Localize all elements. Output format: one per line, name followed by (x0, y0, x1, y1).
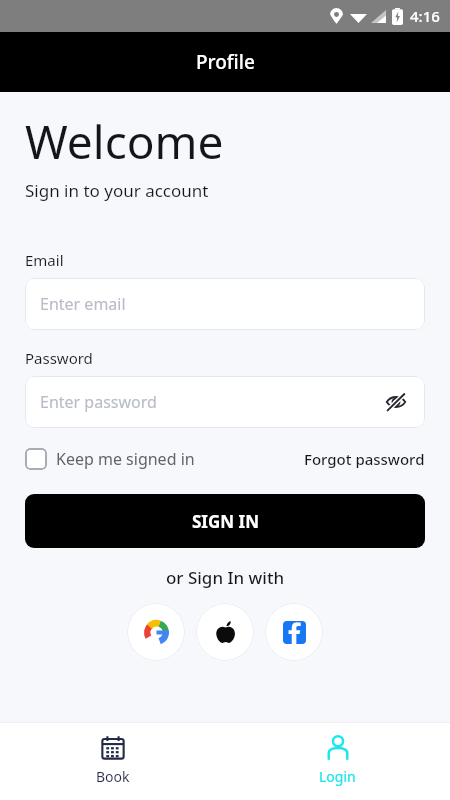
button[interactable]: Sign in with Facebook (265, 603, 323, 661)
staticText: Profile (196, 49, 255, 75)
staticText: Password (25, 348, 93, 368)
staticText: SIGN IN (192, 510, 259, 533)
staticText: Email (25, 250, 64, 270)
staticText: Enter password (40, 391, 382, 413)
button[interactable]: Enter email (25, 278, 425, 330)
button[interactable]: Keep me signed in (25, 444, 195, 474)
button[interactable]: SIGN IN (25, 494, 425, 548)
staticText: Sign in to your account (25, 179, 209, 202)
staticText: Keep me signed in (56, 448, 195, 470)
button[interactable]: Enter password (25, 376, 425, 428)
button[interactable]: Book (0, 722, 225, 800)
staticText: 4:16 (410, 6, 440, 26)
button[interactable]: Sign in with Apple (196, 603, 254, 661)
staticText: Book (96, 767, 130, 786)
button[interactable]: Sign in with Google (127, 603, 185, 661)
staticText: Forgot password (304, 449, 425, 469)
staticText: Welcome (25, 110, 224, 173)
button[interactable]: Login (225, 722, 450, 800)
button[interactable]: Toggle password visibility (382, 388, 410, 416)
staticText: Enter email (40, 293, 410, 315)
button[interactable]: Forgot password (304, 445, 425, 473)
staticText: or Sign In with (0, 566, 450, 589)
staticText: Login (319, 767, 356, 786)
